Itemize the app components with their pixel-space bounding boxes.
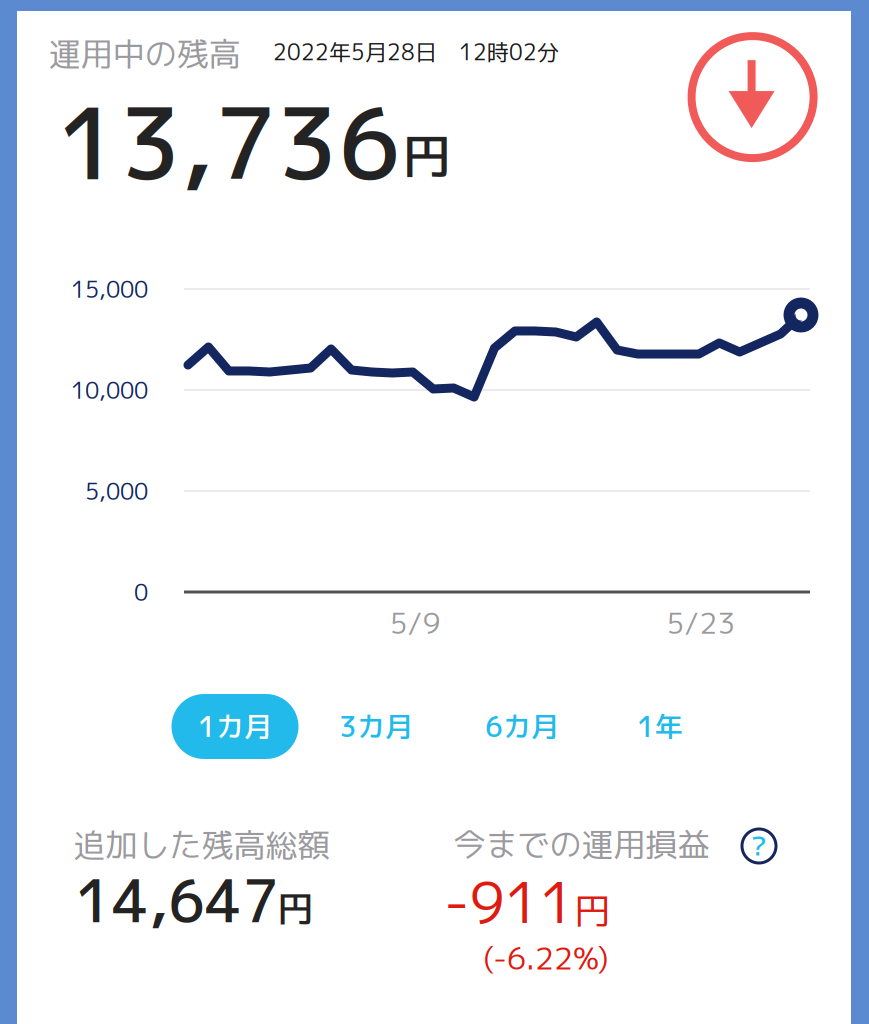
staticText: 6カ月 bbox=[485, 707, 559, 746]
staticText: 2022年5月28日 12時02分 bbox=[273, 36, 559, 67]
staticText: 15,000 bbox=[71, 273, 148, 305]
button[interactable]: ヘルプ bbox=[737, 824, 781, 868]
staticText: 追加した残高総額 bbox=[73, 822, 329, 867]
staticText: 運用中の残高 bbox=[49, 31, 241, 76]
button[interactable]: 入金 bbox=[687, 31, 819, 163]
staticText: 円 bbox=[402, 122, 450, 190]
staticText: ? bbox=[751, 828, 767, 864]
staticText: 14,647 bbox=[75, 860, 279, 941]
staticText: 5/9 bbox=[390, 603, 441, 643]
staticText: -911 bbox=[444, 862, 575, 941]
staticText: (-6.22%) bbox=[483, 937, 609, 979]
staticText: 0 bbox=[134, 576, 148, 608]
button[interactable]: 1年 bbox=[596, 694, 723, 759]
staticText: 1カ月 bbox=[198, 707, 272, 746]
staticText: 5,000 bbox=[85, 475, 148, 507]
staticText: 円 bbox=[278, 883, 314, 934]
button[interactable]: 1カ月 bbox=[171, 694, 298, 759]
staticText: 5/23 bbox=[666, 603, 735, 643]
staticText: 3カ月 bbox=[339, 707, 413, 746]
button[interactable]: 6カ月 bbox=[458, 694, 585, 759]
staticText: 円 bbox=[574, 885, 611, 936]
staticText: 13,736 bbox=[58, 74, 401, 211]
button[interactable]: 3カ月 bbox=[312, 694, 439, 759]
staticText: 1年 bbox=[637, 707, 683, 746]
staticText: 今までの運用損益 bbox=[453, 822, 709, 866]
staticText: 10,000 bbox=[71, 374, 148, 406]
